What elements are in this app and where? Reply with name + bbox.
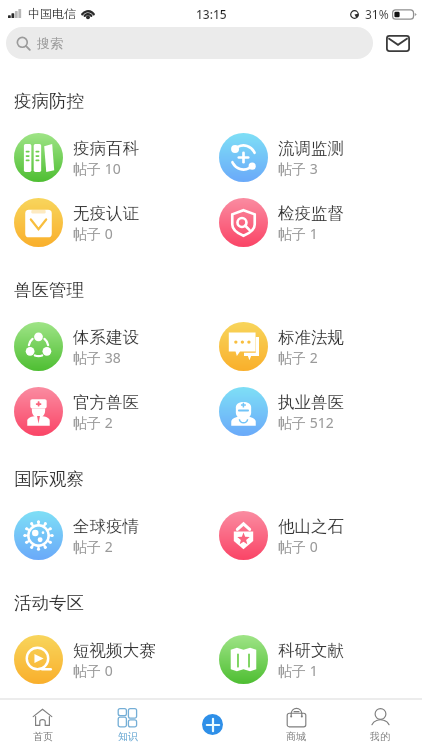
staticText: 疫病防控	[14, 90, 84, 112]
staticText: 体系建设	[73, 327, 139, 348]
staticText: 兽医管理	[14, 279, 84, 301]
button[interactable]: 我的	[338, 700, 422, 750]
staticText: 短视频大赛	[73, 640, 156, 661]
staticText: 中国电信	[28, 6, 76, 21]
button[interactable]: 知识	[85, 700, 170, 750]
button[interactable]: 无疫认证	[0, 190, 205, 255]
staticText: 帖子 1	[278, 224, 318, 243]
staticText: 官方兽医	[73, 392, 139, 413]
button[interactable]: 全球疫情	[0, 503, 205, 568]
staticText: 帖子 0	[278, 537, 318, 556]
staticText: 疫病百科	[73, 138, 139, 159]
staticText: 帖子 3	[278, 159, 318, 178]
staticText: 全球疫情	[73, 516, 139, 537]
button[interactable]: 搜索	[6, 27, 373, 59]
staticText: 帖子 10	[73, 159, 121, 178]
button[interactable]: 科研文献	[205, 627, 422, 692]
staticText: 科研文献	[278, 640, 344, 661]
button[interactable]: 他山之石	[205, 503, 422, 568]
staticText: 帖子 2	[278, 348, 318, 367]
staticText: 执业兽医	[278, 392, 344, 413]
button[interactable]: Add	[170, 700, 254, 750]
staticText: 国际观察	[14, 468, 84, 490]
staticText: 帖子 38	[73, 348, 121, 367]
button[interactable]: 检疫监督	[205, 190, 422, 255]
button[interactable]: 疫病百科	[0, 125, 205, 190]
button[interactable]: 流调监测	[205, 125, 422, 190]
staticText: 他山之石	[278, 516, 344, 537]
button[interactable]: 首页	[0, 700, 85, 750]
staticText: 31%	[365, 6, 389, 22]
staticText: 检疫监督	[278, 203, 344, 224]
button[interactable]: 官方兽医	[0, 379, 205, 444]
staticText: 帖子 2	[73, 413, 113, 432]
staticText: 首页	[33, 730, 53, 743]
staticText: 帖子 0	[73, 224, 113, 243]
button[interactable]: 短视频大赛	[0, 627, 205, 692]
staticText: 帖子 1	[278, 661, 318, 680]
staticText: 标准法规	[278, 327, 344, 348]
button[interactable]: 体系建设	[0, 314, 205, 379]
staticText: 帖子 512	[278, 413, 334, 432]
staticText: 13:15	[196, 6, 227, 22]
staticText: 我的	[370, 730, 390, 743]
button[interactable]: 标准法规	[205, 314, 422, 379]
staticText: 帖子 0	[73, 661, 113, 680]
button[interactable]: 执业兽医	[205, 379, 422, 444]
staticText: 无疫认证	[73, 203, 139, 224]
staticText: 活动专区	[14, 592, 84, 614]
staticText: 商城	[286, 730, 306, 743]
staticText: 帖子 2	[73, 537, 113, 556]
staticText: 流调监测	[278, 138, 344, 159]
staticText: 知识	[118, 730, 138, 743]
staticText: 搜索	[37, 35, 63, 51]
button[interactable]: 商城	[254, 700, 338, 750]
button[interactable]: Messages	[373, 27, 422, 59]
